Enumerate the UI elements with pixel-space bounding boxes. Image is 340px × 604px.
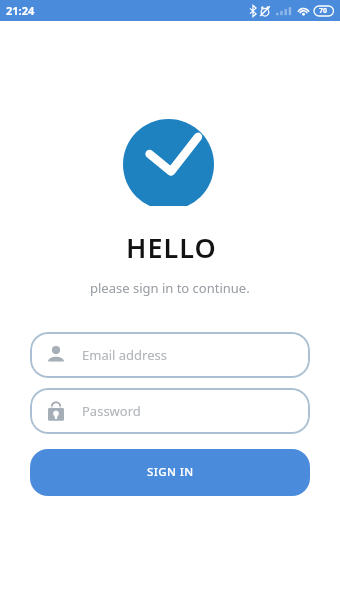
staticText: Email address xyxy=(82,346,167,364)
staticText: please sign in to continue. xyxy=(90,279,250,297)
button[interactable]: SIGN IN xyxy=(30,449,310,496)
staticText: SIGN IN xyxy=(147,464,194,480)
staticText: 70 xyxy=(319,6,328,16)
staticText: HELLO xyxy=(126,229,217,266)
staticText: Password xyxy=(82,402,141,420)
button[interactable]: Password xyxy=(30,388,310,434)
staticText: 21:24 xyxy=(6,3,35,18)
button[interactable]: Email address xyxy=(30,332,310,378)
